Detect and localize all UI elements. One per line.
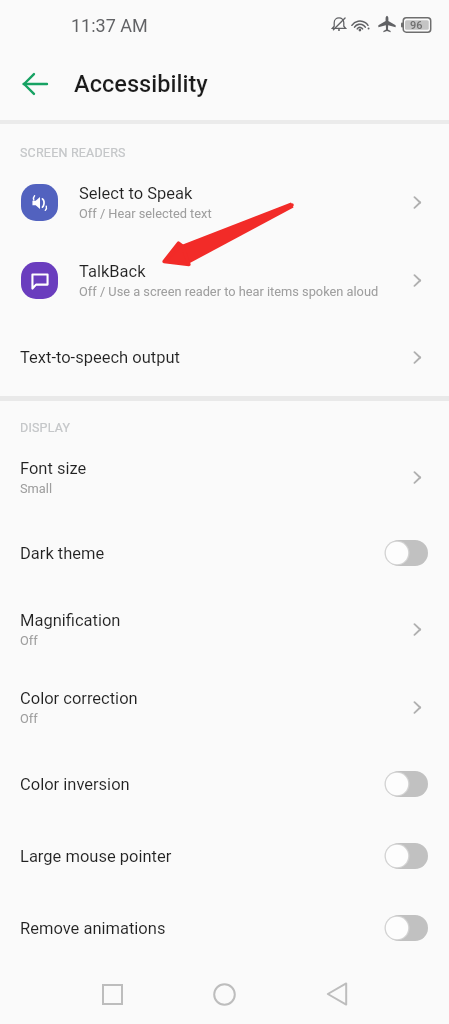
staticText: Off / Hear selected text	[79, 206, 212, 221]
button[interactable]: Color inversion	[0, 747, 449, 821]
staticText: Color correction	[20, 689, 138, 708]
staticText: Accessibility	[74, 70, 208, 98]
staticText: Large mouse pointer	[20, 847, 172, 866]
staticText: Off	[20, 711, 38, 726]
staticText: Font size	[20, 459, 87, 478]
button[interactable]: Recents	[90, 972, 134, 1016]
button[interactable]: Large mouse pointer	[383, 839, 431, 873]
button[interactable]: Dark theme	[0, 515, 449, 591]
button[interactable]: Remove animations	[383, 911, 431, 945]
button[interactable]: Font size	[0, 439, 449, 515]
button[interactable]: Color inversion	[383, 767, 431, 801]
button[interactable]: Text-to-speech output	[0, 319, 449, 396]
staticText: Magnification	[20, 611, 121, 630]
staticText: Color inversion	[20, 775, 130, 794]
staticText: Off	[20, 633, 38, 648]
button[interactable]: Back	[315, 972, 359, 1016]
button[interactable]: Back	[15, 64, 55, 104]
button[interactable]: Color correction	[0, 669, 449, 745]
staticText: 11:37 AM	[71, 15, 148, 36]
button[interactable]: Dark theme	[383, 536, 431, 570]
button[interactable]: Large mouse pointer	[0, 819, 449, 893]
button[interactable]: Remove animations	[0, 891, 449, 965]
staticText: 96	[410, 19, 423, 32]
staticText: Dark theme	[20, 544, 105, 563]
button[interactable]: Magnification	[0, 591, 449, 667]
staticText: TalkBack	[79, 262, 146, 281]
staticText: DISPLAY	[20, 420, 71, 435]
button[interactable]: Select to Speak	[0, 164, 449, 243]
staticText: Small	[20, 481, 53, 496]
staticText: Select to Speak	[79, 184, 193, 203]
button[interactable]: Home	[202, 972, 246, 1016]
button[interactable]: TalkBack	[0, 243, 449, 322]
staticText: Remove animations	[20, 919, 166, 938]
staticText: SCREEN READERS	[20, 145, 126, 160]
staticText: Off / Use a screen reader to hear items …	[79, 284, 379, 299]
staticText: Text-to-speech output	[20, 348, 180, 367]
